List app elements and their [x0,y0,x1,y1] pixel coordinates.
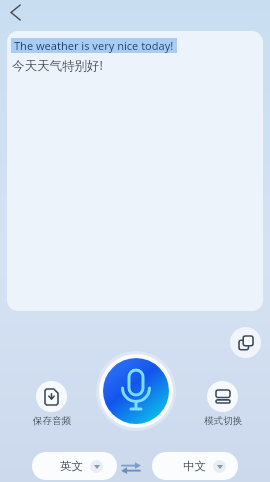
button[interactable] [3,0,29,25]
staticText: 英文 [60,459,83,473]
staticText: 今天天气特别好! [12,57,103,74]
staticText: 中文 [183,459,206,473]
button[interactable]: 英文 [32,452,117,480]
button[interactable] [230,327,261,358]
staticText: 模式切换 [204,415,242,427]
button[interactable]: 中文 [152,452,238,480]
button[interactable] [36,381,67,412]
button[interactable] [120,462,142,474]
button[interactable] [99,354,173,428]
staticText: 保存音频 [33,415,71,427]
button[interactable] [207,381,238,412]
staticText: The weather is very nice today! [14,38,174,53]
